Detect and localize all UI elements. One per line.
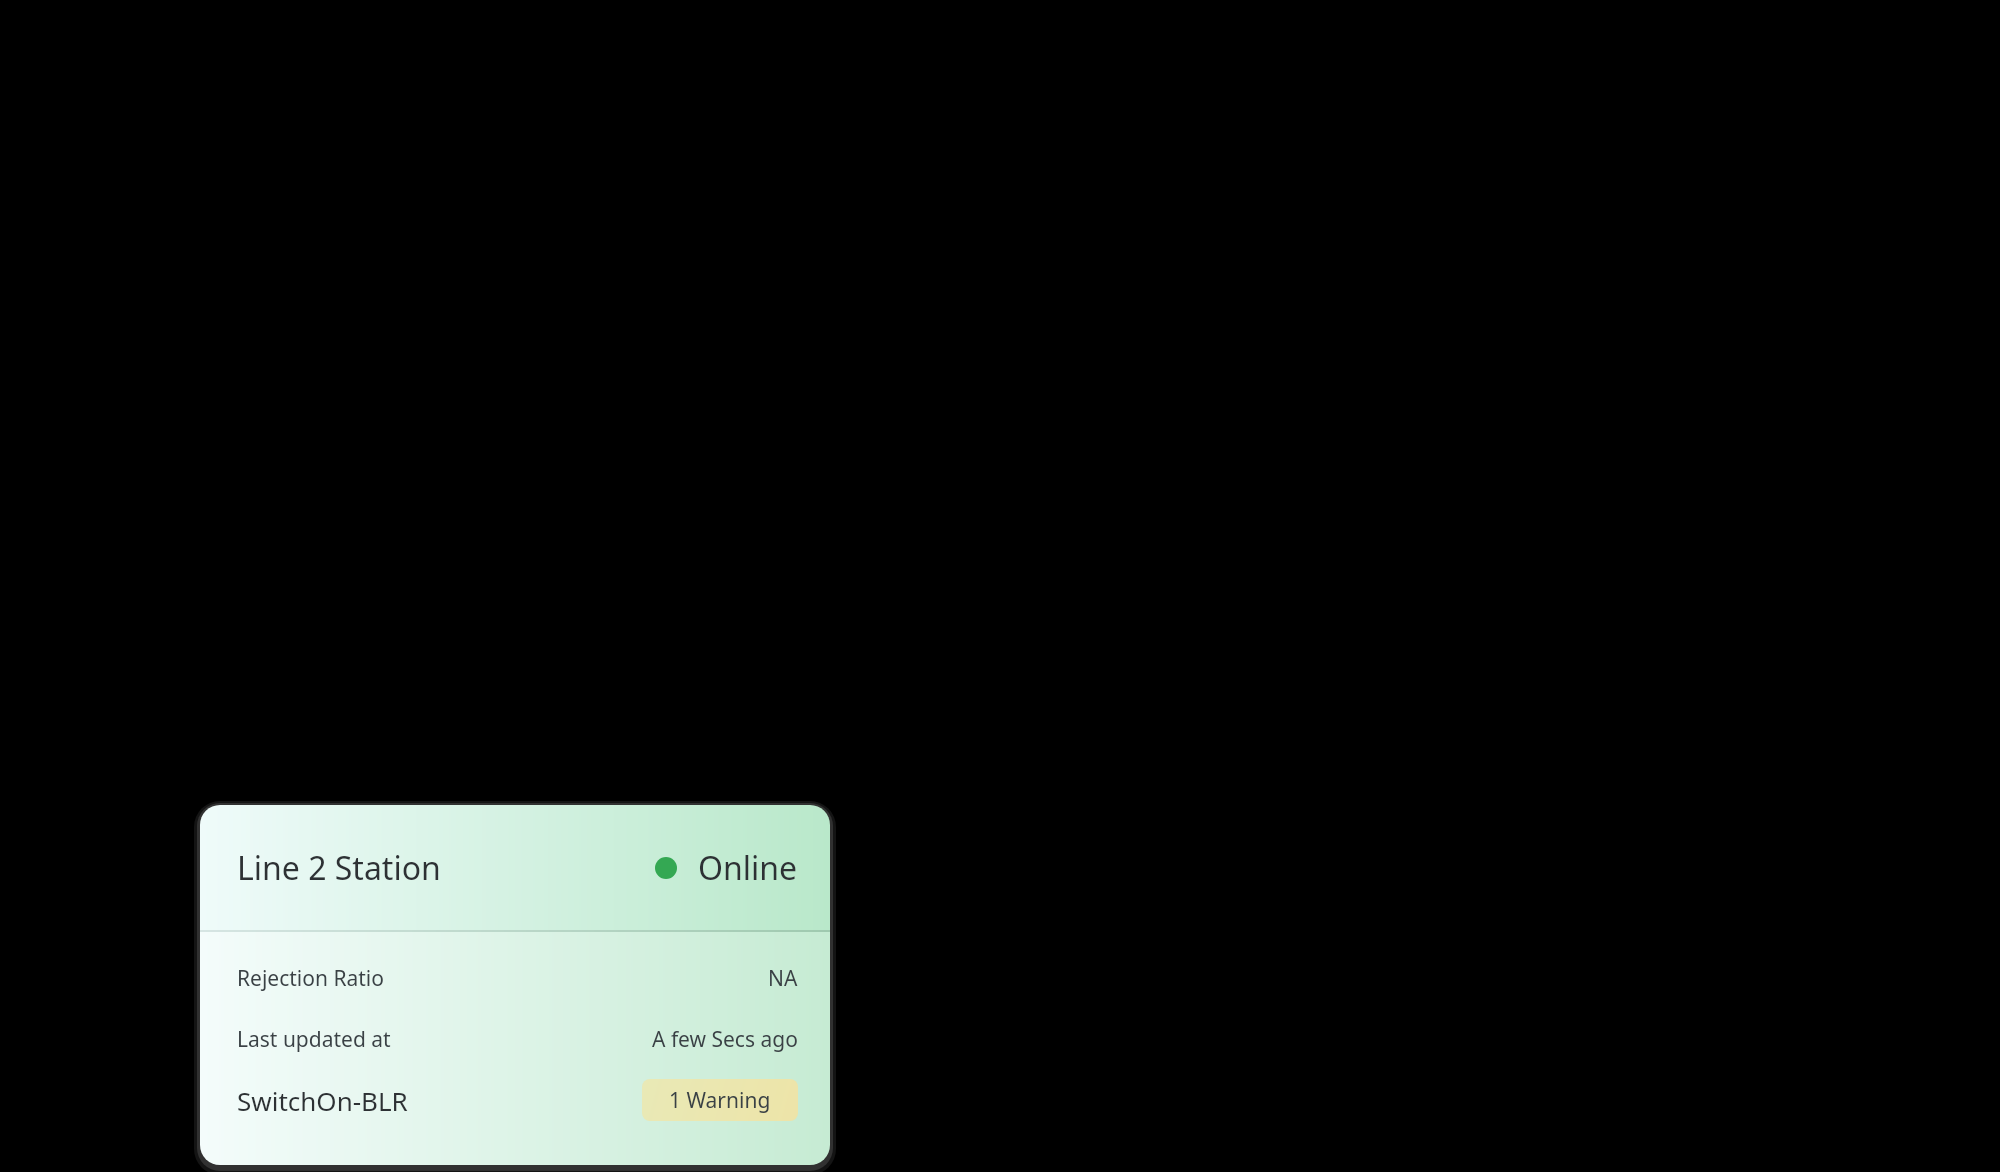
other: Online status indicator <box>655 857 677 879</box>
button[interactable]: Rejection Ratio <box>237 960 798 996</box>
button[interactable]: Last updated at <box>237 1021 798 1057</box>
button[interactable]: 1 Warning <box>642 1079 798 1121</box>
staticText: A few Secs ago <box>652 1025 798 1054</box>
staticText: Rejection Ratio <box>237 964 384 993</box>
staticText: Line 2 Station <box>237 846 441 890</box>
staticText: Last updated at <box>237 1025 391 1054</box>
button[interactable]: SwitchOn-BLR <box>237 1078 798 1122</box>
button[interactable]: Line 2 Station <box>200 805 830 1165</box>
staticText: SwitchOn-BLR <box>237 1083 408 1118</box>
staticText: Online <box>698 846 798 890</box>
staticText: NA <box>768 964 798 993</box>
staticText: 1 Warning <box>669 1086 771 1115</box>
